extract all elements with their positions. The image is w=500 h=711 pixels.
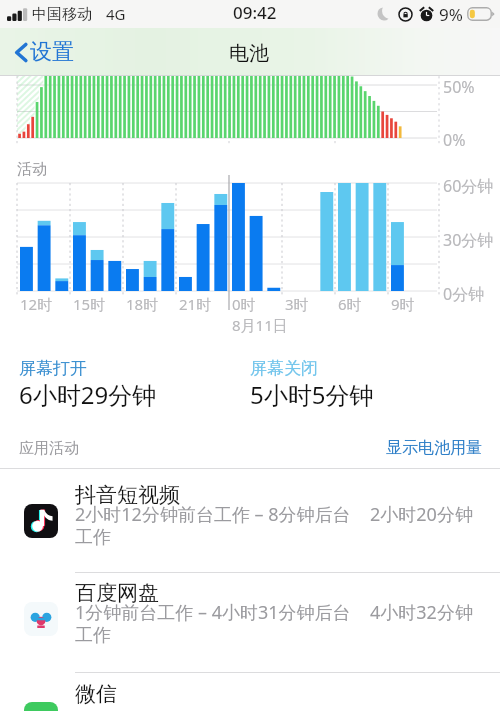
staticText: 3时 [285,294,309,314]
staticText: 9% [439,3,463,26]
button[interactable]: 微信 [0,681,500,711]
button[interactable]: 抖音短视频 [0,480,500,574]
staticText: 百度网盘 [75,580,159,606]
staticText: 4小时32分钟 [370,600,473,625]
staticText: 21时 [179,294,212,314]
staticText: 9时 [391,294,415,314]
staticText: 工作 [75,526,111,549]
staticText: 50% [443,76,475,98]
staticText: 工作 [75,624,111,647]
staticText: 1分钟前台工作 – 4小时31分钟后台 [75,600,351,625]
staticText: 60分钟 [443,175,494,197]
staticText: 应用活动 [19,439,79,458]
staticText: 4G [106,4,126,24]
other: Do not disturb [377,7,391,21]
staticText: 15时 [73,294,106,314]
staticText: 5小时5分钟 [250,378,374,411]
staticText: 中国移动 [32,5,92,24]
other: Alarm set [419,7,434,22]
staticText: 6时 [338,294,362,314]
staticText: 0时 [232,294,256,314]
staticText: 显示电池用量 [386,438,482,458]
staticText: 0分钟 [443,283,485,305]
button[interactable]: 显示电池用量 [386,438,482,458]
staticText: 屏幕打开 [19,358,87,379]
button[interactable]: 百度网盘 [0,578,500,672]
staticText: 09:42 [233,1,277,24]
staticText: 抖音短视频 [75,482,180,508]
staticText: 12时 [20,294,53,314]
staticText: 8月11日 [232,315,288,335]
staticText: 微信 [75,681,117,707]
staticText: 电池 [229,41,269,66]
staticText: 18时 [126,294,159,314]
other: Battery 9 percent [467,7,495,21]
staticText: 0% [443,129,466,150]
staticText: 6小时29分钟 [19,378,157,411]
staticText: 设置 [30,38,74,66]
staticText: 2小时20分钟 [370,502,473,527]
other: Rotation lock [398,7,413,22]
button[interactable]: 设置 [12,32,77,72]
staticText: 活动 [17,160,47,179]
staticText: 屏幕关闭 [250,358,318,379]
staticText: 30分钟 [443,229,494,251]
staticText: 2小时12分钟前台工作 – 8分钟后台 [75,502,351,527]
